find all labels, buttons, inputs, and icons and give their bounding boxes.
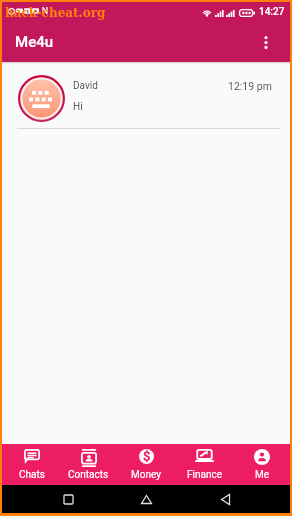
staticText: Me xyxy=(255,469,270,481)
staticText: 12:19 pm xyxy=(228,80,272,92)
staticText: Hi xyxy=(73,101,83,113)
staticText: hack-cheat.org xyxy=(5,6,106,20)
button[interactable]: Chats xyxy=(2,444,59,485)
button[interactable]: Contacts xyxy=(59,444,116,485)
button[interactable]: Home xyxy=(133,486,159,512)
staticText: Me4u xyxy=(15,33,54,51)
staticText: Chats xyxy=(19,469,45,481)
button[interactable]: Me xyxy=(232,444,290,485)
button[interactable]: Recents xyxy=(55,486,81,512)
staticText: 14:27 xyxy=(259,6,285,18)
staticText: N xyxy=(42,6,49,16)
staticText: $ xyxy=(143,449,151,464)
button[interactable]: Back xyxy=(212,486,238,512)
button[interactable]: $ xyxy=(116,444,174,485)
staticText: Finance xyxy=(187,469,222,481)
staticText: Money xyxy=(131,469,161,481)
button[interactable]: David xyxy=(2,64,290,132)
button[interactable]: More options xyxy=(248,24,284,60)
button[interactable]: Finance xyxy=(174,444,232,485)
staticText: David xyxy=(73,80,98,92)
staticText: Contacts xyxy=(68,469,109,481)
